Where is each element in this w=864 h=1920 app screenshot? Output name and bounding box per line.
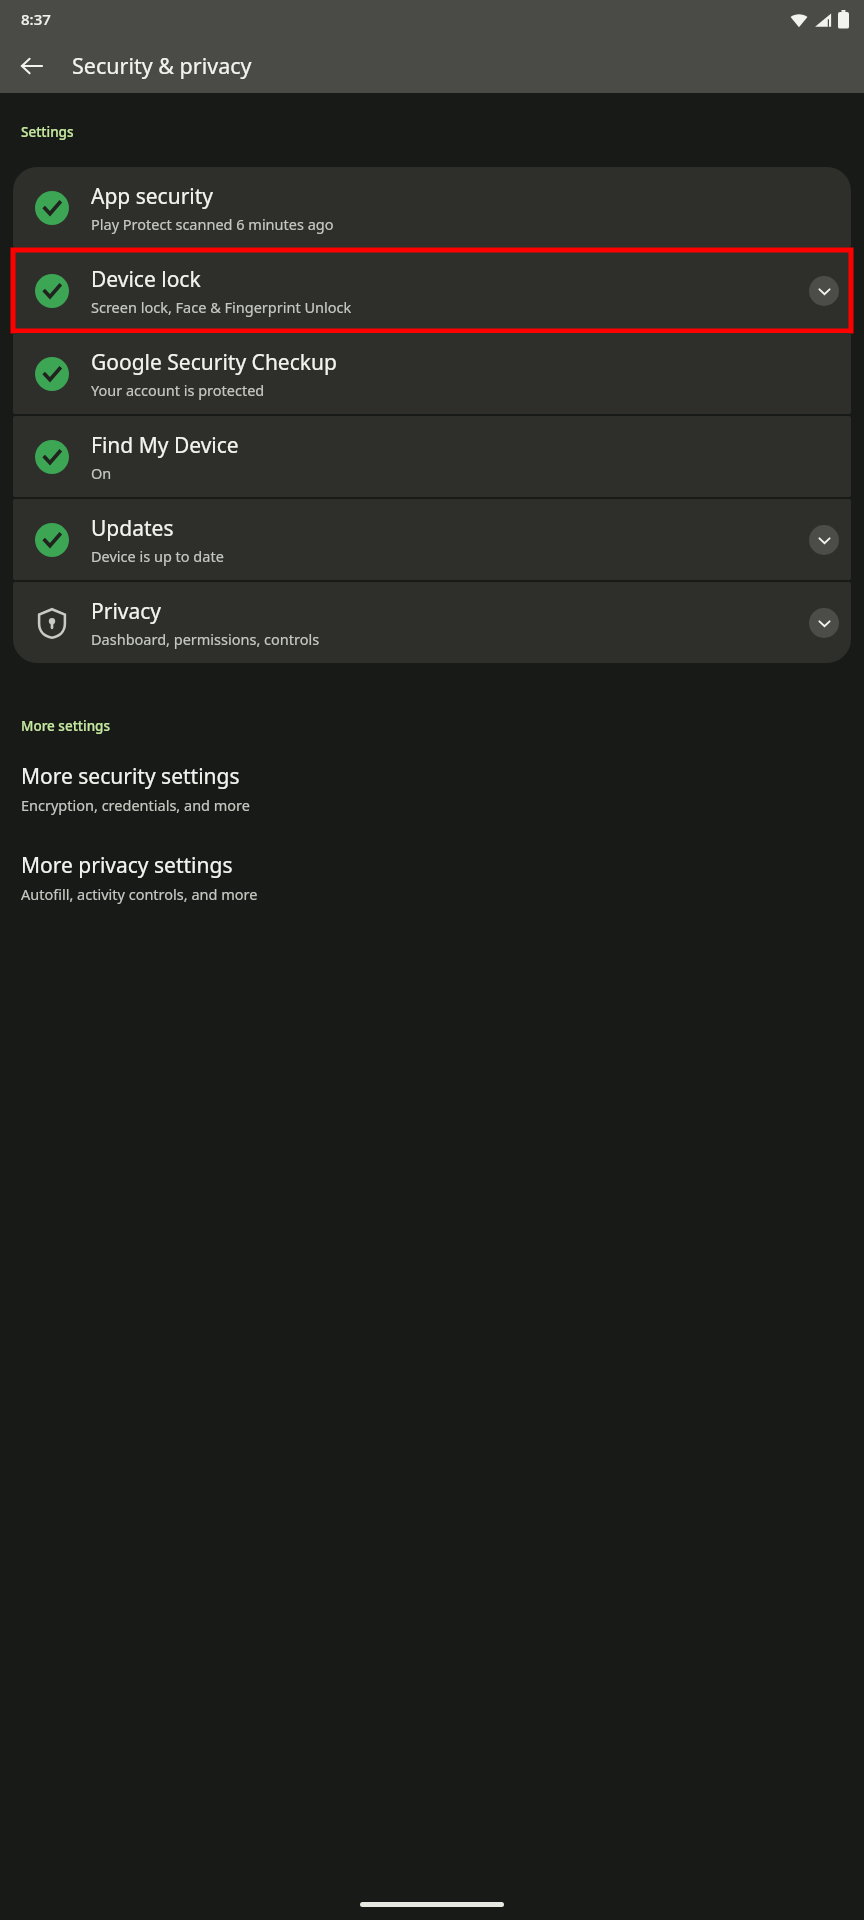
button[interactable]: Privacy (13, 582, 851, 663)
staticText: More security settings (21, 762, 240, 791)
staticText: Find My Device (91, 431, 239, 460)
staticText: Privacy (91, 597, 162, 626)
button[interactable]: More security settings (0, 760, 864, 817)
staticText: Google Security Checkup (91, 348, 337, 377)
staticText: Settings (21, 123, 74, 141)
staticText: Updates (91, 514, 174, 543)
staticText: More privacy settings (21, 851, 233, 880)
staticText: More settings (21, 717, 111, 735)
staticText: Device lock (91, 265, 201, 294)
button[interactable]: More privacy settings (0, 849, 864, 906)
staticText: Screen lock, Face & Fingerprint Unlock (91, 297, 352, 317)
staticText: 8:37 (21, 9, 51, 29)
staticText: Security & privacy (72, 51, 252, 80)
staticText: Autofill, activity controls, and more (21, 884, 258, 904)
button[interactable]: Back (8, 42, 56, 90)
button[interactable]: Find My Device (13, 416, 851, 497)
staticText: App security (91, 182, 214, 211)
button[interactable]: Expand (809, 525, 839, 555)
button[interactable]: Updates (13, 499, 851, 580)
button[interactable]: App security (13, 167, 851, 248)
staticText: Your account is protected (91, 380, 265, 400)
staticText: On (91, 463, 112, 483)
button[interactable]: Google Security Checkup (13, 333, 851, 414)
button[interactable]: Expand (809, 608, 839, 638)
staticText: Encryption, credentials, and more (21, 795, 250, 815)
button[interactable]: Device lock (13, 250, 851, 331)
staticText: Device is up to date (91, 546, 224, 566)
button[interactable]: Expand (809, 276, 839, 306)
staticText: Dashboard, permissions, controls (91, 629, 320, 649)
staticText: Play Protect scanned 6 minutes ago (91, 214, 334, 234)
